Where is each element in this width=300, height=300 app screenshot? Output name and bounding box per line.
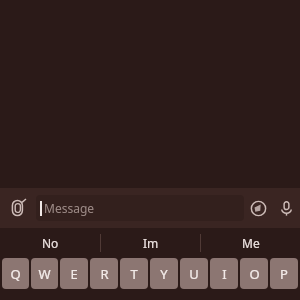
button[interactable]: P	[270, 258, 298, 289]
button[interactable]: U	[180, 258, 208, 289]
button[interactable]: Stickers	[244, 188, 272, 228]
staticText: I	[222, 265, 227, 283]
staticText: Me	[242, 235, 260, 251]
staticText: No	[42, 235, 59, 251]
button[interactable]: Q	[2, 258, 29, 289]
staticText: P	[280, 265, 288, 283]
button[interactable]: O	[240, 258, 268, 289]
button[interactable]: Attach	[0, 188, 36, 228]
button[interactable]: Me	[201, 228, 300, 258]
button[interactable]: E	[60, 258, 88, 289]
staticText: Message	[44, 200, 95, 216]
button[interactable]: No	[0, 228, 100, 258]
staticText: Y	[160, 265, 168, 283]
button[interactable]: T	[120, 258, 148, 289]
staticText: Q	[10, 265, 21, 283]
button[interactable]: Im	[101, 228, 200, 258]
staticText: E	[70, 265, 78, 283]
staticText: W	[38, 265, 51, 283]
staticText: R	[100, 265, 109, 283]
staticText: T	[130, 265, 138, 283]
staticText: Im	[143, 235, 159, 251]
button[interactable]: W	[31, 258, 58, 289]
button[interactable]: R	[90, 258, 118, 289]
button[interactable]: Y	[150, 258, 178, 289]
staticText: O	[249, 265, 260, 283]
button[interactable]: I	[210, 258, 238, 289]
button[interactable]: Voice input	[272, 188, 300, 228]
button[interactable]: Message	[36, 195, 244, 221]
staticText: U	[189, 265, 199, 283]
